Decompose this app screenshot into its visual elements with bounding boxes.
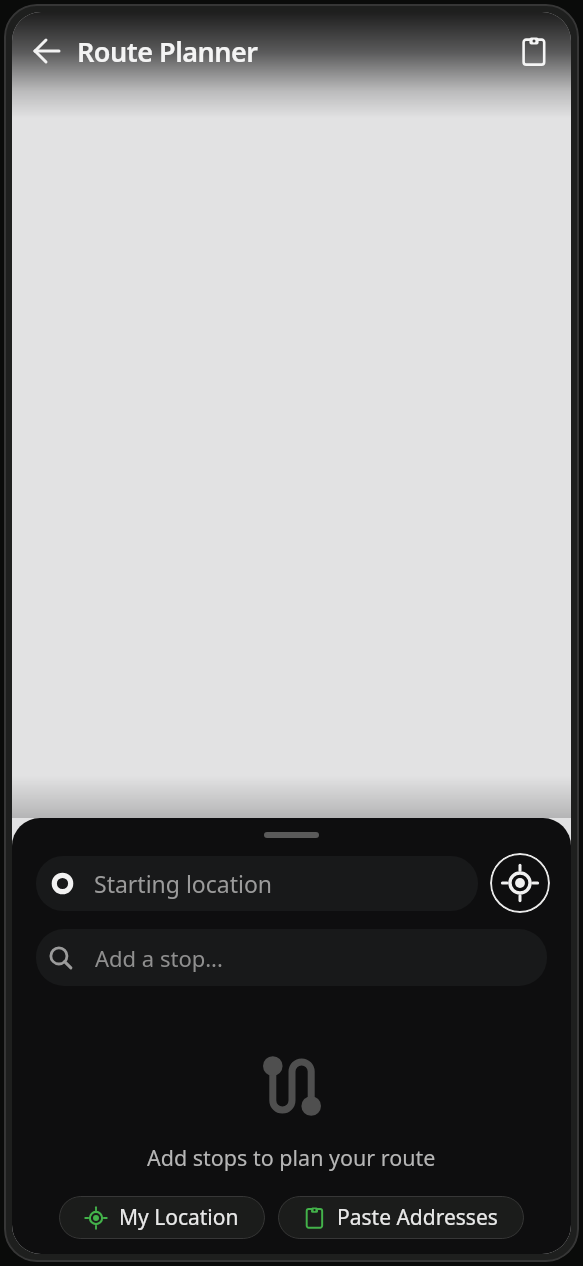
staticText: Route Planner xyxy=(77,33,258,70)
button[interactable] xyxy=(490,853,550,913)
staticText: Starting location xyxy=(94,868,273,899)
staticText: My Location xyxy=(119,1203,239,1232)
staticText: Add a stop... xyxy=(95,943,223,973)
staticText: Paste Addresses xyxy=(337,1203,498,1232)
button[interactable]: My Location xyxy=(59,1196,265,1239)
button[interactable] xyxy=(25,29,69,73)
button[interactable] xyxy=(511,28,557,74)
button[interactable]: Starting location xyxy=(36,856,478,911)
button[interactable]: Add a stop... xyxy=(36,929,547,986)
staticText: Add stops to plan your route xyxy=(147,1143,436,1172)
button[interactable]: Paste Addresses xyxy=(278,1196,524,1239)
